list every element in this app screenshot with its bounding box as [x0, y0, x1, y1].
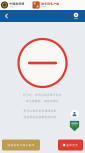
- staticText: 或已被删除，请核对网址: [26, 99, 59, 103]
- button[interactable]: 返回首页: [58, 139, 83, 150]
- staticText: 中国政府网: [10, 2, 25, 6]
- staticText: 对不起，您访问的页面不存在: [23, 93, 62, 96]
- button[interactable]: Security badge: [69, 120, 79, 131]
- button[interactable]: Government services: [69, 10, 83, 22]
- staticText: 您可以返回首页继续浏览: [23, 109, 56, 112]
- staticText: 或使用站内搜索查找内容: [23, 115, 56, 119]
- staticText: 政务服务: [74, 18, 78, 19]
- staticText: 小程序上线: [41, 6, 46, 8]
- button[interactable]: 国务院客户端小程序: [2, 139, 40, 150]
- staticText: www.gov.cn: [10, 6, 18, 8]
- staticText: 国务院客户端: [41, 2, 59, 6]
- staticText: 国务院客户端小程序: [7, 143, 34, 147]
- button[interactable]: Account: [70, 109, 79, 118]
- staticText: 返回首页: [66, 143, 78, 147]
- button[interactable]: Back: [2, 10, 11, 22]
